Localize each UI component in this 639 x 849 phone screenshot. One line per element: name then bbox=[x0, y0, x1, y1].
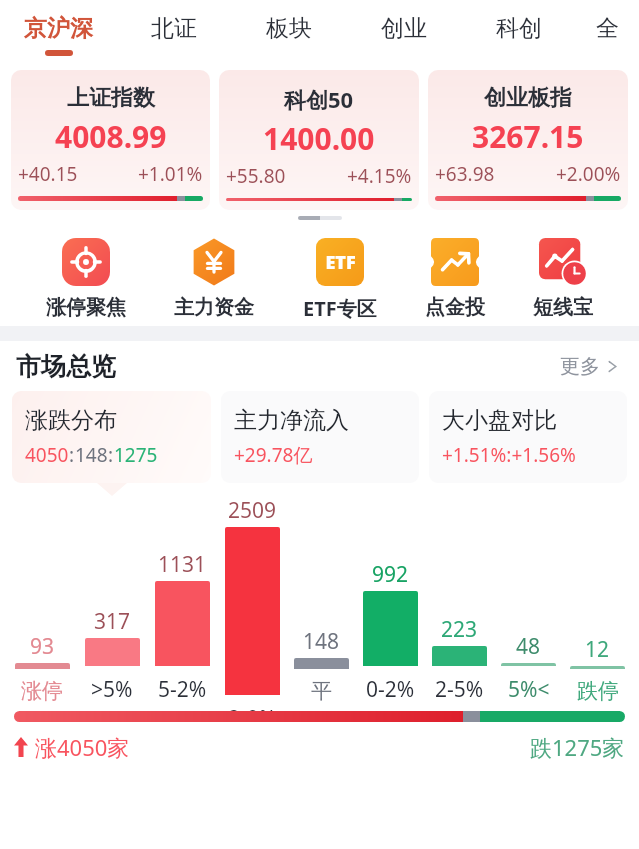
staticText: 12 bbox=[585, 635, 610, 664]
button[interactable]: 12 bbox=[563, 635, 632, 711]
staticText: 2509 bbox=[228, 496, 277, 525]
button[interactable]: 上证指数 bbox=[11, 70, 210, 210]
staticText: 2-5% bbox=[435, 675, 484, 704]
button[interactable]: 992 bbox=[356, 560, 425, 711]
button[interactable]: 主力资金 bbox=[168, 238, 260, 320]
button[interactable]: 223 bbox=[425, 615, 494, 711]
staticText: 223 bbox=[441, 615, 478, 644]
staticText: +2.00% bbox=[556, 161, 621, 187]
staticText: 创业板指 bbox=[484, 84, 572, 112]
staticText: 科创50 bbox=[284, 84, 354, 114]
staticText: 1275 bbox=[114, 442, 158, 468]
button[interactable]: 全 bbox=[576, 0, 639, 70]
staticText: +1.51%:+1.56% bbox=[442, 442, 576, 468]
staticText: +1.01% bbox=[138, 161, 203, 187]
staticText: 3267.15 bbox=[472, 116, 584, 157]
staticText: 148 bbox=[303, 627, 340, 656]
staticText: 0-2% bbox=[366, 675, 415, 704]
staticText: 平 bbox=[311, 678, 332, 704]
staticText: +40.15 bbox=[18, 161, 78, 187]
button[interactable]: 创业板指 bbox=[428, 70, 628, 210]
staticText: 创业 bbox=[381, 14, 427, 43]
button[interactable]: 板块 bbox=[231, 0, 346, 70]
staticText: 上证指数 bbox=[67, 84, 155, 112]
button[interactable]: 317 bbox=[77, 607, 147, 711]
staticText: 1400.00 bbox=[263, 118, 375, 159]
staticText: 跌1275家 bbox=[530, 732, 625, 762]
staticText: 48 bbox=[516, 632, 541, 661]
staticText: 4008.99 bbox=[55, 116, 167, 157]
staticText: 板块 bbox=[266, 14, 312, 43]
staticText: +4.15% bbox=[347, 163, 412, 189]
staticText: 5%< bbox=[508, 675, 550, 704]
staticText: 5-2% bbox=[158, 675, 207, 704]
staticText: 1131 bbox=[158, 550, 207, 579]
staticText: 主力资金 bbox=[174, 295, 254, 320]
staticText: 148 bbox=[75, 442, 108, 468]
button[interactable]: 科创 bbox=[461, 0, 576, 70]
staticText: 点金投 bbox=[425, 295, 485, 320]
staticText: +55.80 bbox=[226, 163, 286, 189]
staticText: 跌停 bbox=[577, 678, 619, 704]
staticText: 涨跌分布 bbox=[25, 406, 117, 435]
button[interactable]: 涨停聚焦 bbox=[40, 238, 132, 320]
button[interactable]: 93 bbox=[7, 632, 77, 711]
staticText: +63.98 bbox=[435, 161, 495, 187]
staticText: 涨4050家 bbox=[35, 732, 130, 762]
staticText: 317 bbox=[94, 607, 131, 636]
staticText: 992 bbox=[372, 560, 409, 589]
button[interactable]: 大小盘对比 bbox=[429, 391, 627, 483]
staticText: 全 bbox=[596, 14, 619, 43]
button[interactable]: ETF专区 bbox=[297, 238, 383, 322]
staticText: 北证 bbox=[151, 14, 197, 43]
staticText: 93 bbox=[30, 632, 55, 661]
staticText: 市场总览 bbox=[16, 351, 116, 382]
staticText: 科创 bbox=[496, 14, 542, 43]
button[interactable]: 创业 bbox=[346, 0, 461, 70]
button[interactable]: 点金投 bbox=[419, 238, 491, 320]
staticText: 更多 bbox=[560, 354, 600, 379]
staticText: +29.78亿 bbox=[234, 442, 313, 468]
staticText: 涨停聚焦 bbox=[46, 295, 126, 320]
button[interactable]: 1131 bbox=[147, 550, 217, 711]
button[interactable]: 48 bbox=[494, 632, 563, 711]
staticText: 4050 bbox=[25, 442, 69, 468]
staticText: ETF专区 bbox=[303, 295, 377, 322]
staticText: 大小盘对比 bbox=[442, 406, 557, 435]
button[interactable]: 更多 bbox=[556, 350, 623, 383]
button[interactable]: 主力净流入 bbox=[221, 391, 419, 483]
staticText: 涨停 bbox=[21, 678, 63, 704]
button[interactable]: 北证 bbox=[116, 0, 231, 70]
staticText: ETF bbox=[325, 250, 356, 275]
staticText: 2-0% bbox=[228, 704, 277, 711]
staticText: >5% bbox=[91, 675, 133, 704]
button[interactable]: 短线宝 bbox=[527, 238, 599, 320]
button[interactable]: 京沪深 bbox=[0, 0, 116, 70]
staticText: : bbox=[69, 442, 75, 468]
staticText: : bbox=[108, 442, 114, 468]
button[interactable]: 2509 bbox=[217, 496, 287, 711]
button[interactable]: 148 bbox=[287, 627, 356, 711]
staticText: 主力净流入 bbox=[234, 406, 349, 435]
staticText: 京沪深 bbox=[24, 14, 93, 43]
button[interactable]: 科创50 bbox=[219, 70, 419, 210]
staticText: 短线宝 bbox=[533, 295, 593, 320]
button[interactable]: 涨跌分布 bbox=[12, 391, 211, 483]
